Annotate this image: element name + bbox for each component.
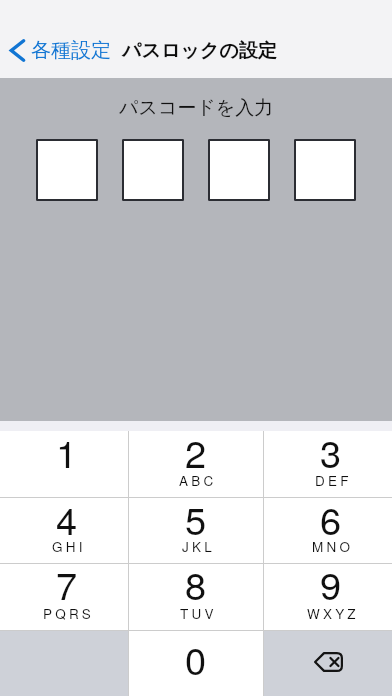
staticText: MNO [312, 537, 354, 556]
button[interactable]: 2 [129, 431, 263, 497]
staticText: 8 [185, 556, 207, 610]
button[interactable]: 6 [264, 498, 392, 563]
staticText: ABC [179, 471, 217, 490]
staticText: 1 [56, 424, 78, 478]
staticText: PQRS [43, 604, 95, 623]
button[interactable]: 1 [0, 431, 128, 497]
staticText: 9 [320, 556, 342, 610]
staticText: 4 [56, 491, 78, 545]
button[interactable]: 0 [129, 631, 263, 696]
staticText: WXYZ [307, 604, 359, 623]
button[interactable]: 3 [264, 431, 392, 497]
staticText: JKL [182, 537, 215, 556]
staticText: 2 [185, 424, 207, 478]
staticText: 6 [320, 491, 342, 545]
staticText: GHI [52, 537, 86, 556]
button[interactable]: 4 [0, 498, 128, 563]
button[interactable]: 5 [129, 498, 263, 563]
staticText: DEF [315, 471, 352, 490]
staticText: パスコードを入力 [119, 96, 274, 120]
button[interactable]: 8 [129, 564, 263, 630]
staticText: 7 [56, 556, 78, 610]
staticText: 3 [320, 424, 342, 478]
staticText: 各種設定 [31, 38, 111, 63]
button[interactable]: 各種設定 [0, 38, 113, 63]
staticText: 5 [185, 491, 207, 545]
staticText: TUV [180, 604, 217, 623]
staticText: パスロックの設定 [122, 39, 277, 63]
button[interactable]: 7 [0, 564, 128, 630]
button[interactable]: 9 [264, 564, 392, 630]
staticText: 0 [185, 631, 207, 685]
button[interactable]: Backspace [264, 631, 392, 696]
